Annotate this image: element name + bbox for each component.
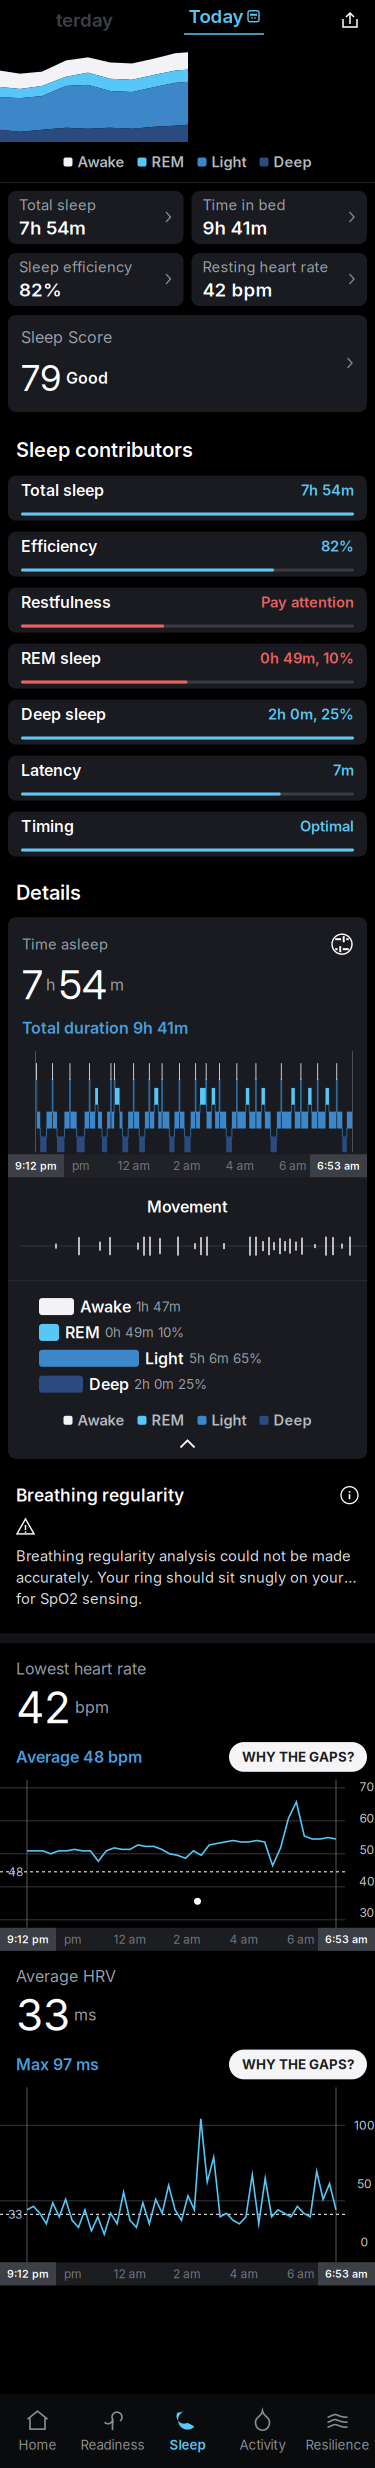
staticText: Time asleep bbox=[22, 935, 108, 953]
staticText: 0 bbox=[360, 2235, 368, 2249]
button[interactable]: Activity bbox=[225, 2394, 300, 2468]
staticText: 10% bbox=[158, 1325, 184, 1340]
button[interactable]: Collapse bbox=[8, 1429, 367, 1459]
staticText: 9:12 pm bbox=[7, 1933, 49, 1946]
staticText: 40 bbox=[359, 1874, 375, 1888]
button[interactable]: Total sleep bbox=[8, 476, 367, 521]
button[interactable]: WHY THE GAPS? bbox=[229, 2050, 367, 2079]
staticText: 9h 41m bbox=[202, 217, 267, 239]
staticText: 70 bbox=[359, 1780, 374, 1794]
staticText: 5h 6m bbox=[189, 1350, 229, 1366]
staticText: REM sleep bbox=[21, 649, 101, 668]
staticText: accurately. Your ring should sit snugly … bbox=[16, 1569, 359, 1586]
staticText: REM bbox=[151, 153, 184, 171]
staticText: WHY THE GAPS? bbox=[242, 1749, 354, 1765]
staticText: Light bbox=[211, 153, 246, 171]
staticText: Deep bbox=[273, 1412, 311, 1429]
staticText: WHY THE GAPS? bbox=[242, 2057, 354, 2072]
staticText: 65% bbox=[233, 1350, 262, 1366]
staticText: 0h 49m, 10% bbox=[260, 649, 354, 667]
button[interactable]: terday bbox=[56, 9, 113, 31]
staticText: Deep bbox=[89, 1375, 129, 1394]
staticText: Total sleep bbox=[21, 481, 104, 500]
button[interactable]: Chart settings bbox=[331, 933, 353, 955]
staticText: Sleep efficiency bbox=[19, 258, 132, 276]
staticText: 33 bbox=[16, 1989, 70, 2041]
staticText: 2 am bbox=[173, 1159, 201, 1173]
staticText: h bbox=[46, 975, 55, 994]
staticText: ms bbox=[74, 2005, 96, 2024]
staticText: terday bbox=[56, 9, 113, 31]
staticText: 100 bbox=[354, 2118, 375, 2132]
button[interactable]: Deep sleep bbox=[8, 700, 367, 745]
staticText: 6 am bbox=[287, 2267, 315, 2281]
button[interactable]: Restfulness bbox=[8, 588, 367, 633]
button[interactable]: Sleep efficiency bbox=[8, 253, 183, 306]
staticText: Average HRV bbox=[16, 1967, 116, 1986]
staticText: Details bbox=[16, 881, 81, 904]
button[interactable]: Readiness bbox=[75, 2394, 150, 2468]
staticText: 50 bbox=[359, 1843, 374, 1857]
staticText: 42 bpm bbox=[202, 279, 272, 301]
button[interactable]: Timing bbox=[8, 812, 367, 857]
staticText: pm bbox=[64, 2267, 82, 2281]
staticText: 82% bbox=[321, 537, 354, 555]
staticText: Awake bbox=[77, 153, 124, 171]
staticText: Breathing regularity analysis could not … bbox=[16, 1547, 351, 1565]
staticText: Sleep bbox=[169, 2437, 205, 2453]
staticText: Timing bbox=[21, 817, 74, 836]
staticText: 2h 0m, 25% bbox=[268, 705, 354, 723]
button[interactable]: Share bbox=[335, 5, 365, 35]
staticText: 2 am bbox=[173, 2267, 201, 2281]
staticText: Total duration 9h 41m bbox=[22, 1018, 188, 1037]
button[interactable]: Time in bed bbox=[191, 191, 367, 244]
button[interactable]: Resting heart rate bbox=[191, 253, 367, 306]
button[interactable]: Resilience bbox=[300, 2394, 375, 2468]
staticText: 4 am bbox=[229, 2267, 258, 2281]
staticText: REM bbox=[151, 1412, 184, 1429]
button[interactable]: Sleep Score bbox=[8, 315, 367, 412]
staticText: 6:53 am bbox=[325, 2267, 368, 2280]
staticText: 7h 54m bbox=[301, 481, 354, 499]
staticText: 4 am bbox=[229, 1932, 258, 1946]
staticText: Light bbox=[145, 1349, 184, 1368]
staticText: Awake bbox=[77, 1412, 124, 1429]
staticText: 2h 0m bbox=[134, 1376, 174, 1392]
staticText: Today bbox=[188, 5, 243, 27]
staticText: 54 bbox=[59, 961, 107, 1008]
staticText: Deep sleep bbox=[21, 705, 106, 724]
button[interactable]: REM sleep bbox=[8, 644, 367, 689]
button[interactable]: Latency bbox=[8, 756, 367, 801]
staticText: 6 am bbox=[279, 1159, 307, 1173]
staticText: 30 bbox=[359, 1906, 374, 1920]
button[interactable]: Today bbox=[184, 5, 264, 35]
button[interactable]: Sleep bbox=[150, 2394, 225, 2468]
staticText: 42 bbox=[16, 1681, 71, 1733]
staticText: Resilience bbox=[305, 2437, 369, 2453]
staticText: 48 bbox=[8, 1865, 23, 1879]
staticText: 12 am bbox=[117, 1159, 150, 1173]
staticText: Sleep contributors bbox=[16, 438, 193, 462]
staticText: Efficiency bbox=[21, 537, 97, 556]
staticText: pm bbox=[64, 1932, 82, 1946]
staticText: m bbox=[110, 975, 124, 994]
staticText: 50 bbox=[357, 2177, 372, 2191]
staticText: Activity bbox=[239, 2437, 285, 2453]
staticText: pm bbox=[72, 1159, 90, 1173]
button[interactable]: WHY THE GAPS? bbox=[229, 1742, 367, 1772]
staticText: for SpO2 sensing. bbox=[16, 1590, 142, 1607]
staticText: 25% bbox=[178, 1376, 207, 1392]
staticText: 6:53 am bbox=[325, 1933, 368, 1946]
button[interactable]: Efficiency bbox=[8, 532, 367, 577]
staticText: Time in bed bbox=[202, 196, 285, 214]
button[interactable]: Total sleep bbox=[8, 191, 183, 244]
staticText: 4 am bbox=[225, 1159, 254, 1173]
button[interactable]: Home bbox=[0, 2394, 75, 2468]
staticText: 1h 47m bbox=[136, 1299, 181, 1314]
staticText: Optimal bbox=[300, 817, 354, 835]
staticText: Average 48 bpm bbox=[16, 1747, 142, 1766]
staticText: 9:12 pm bbox=[7, 2267, 49, 2280]
button[interactable]: Info bbox=[340, 1486, 359, 1505]
staticText: Max 97 ms bbox=[16, 2055, 99, 2074]
staticText: Breathing regularity bbox=[16, 1485, 184, 1505]
